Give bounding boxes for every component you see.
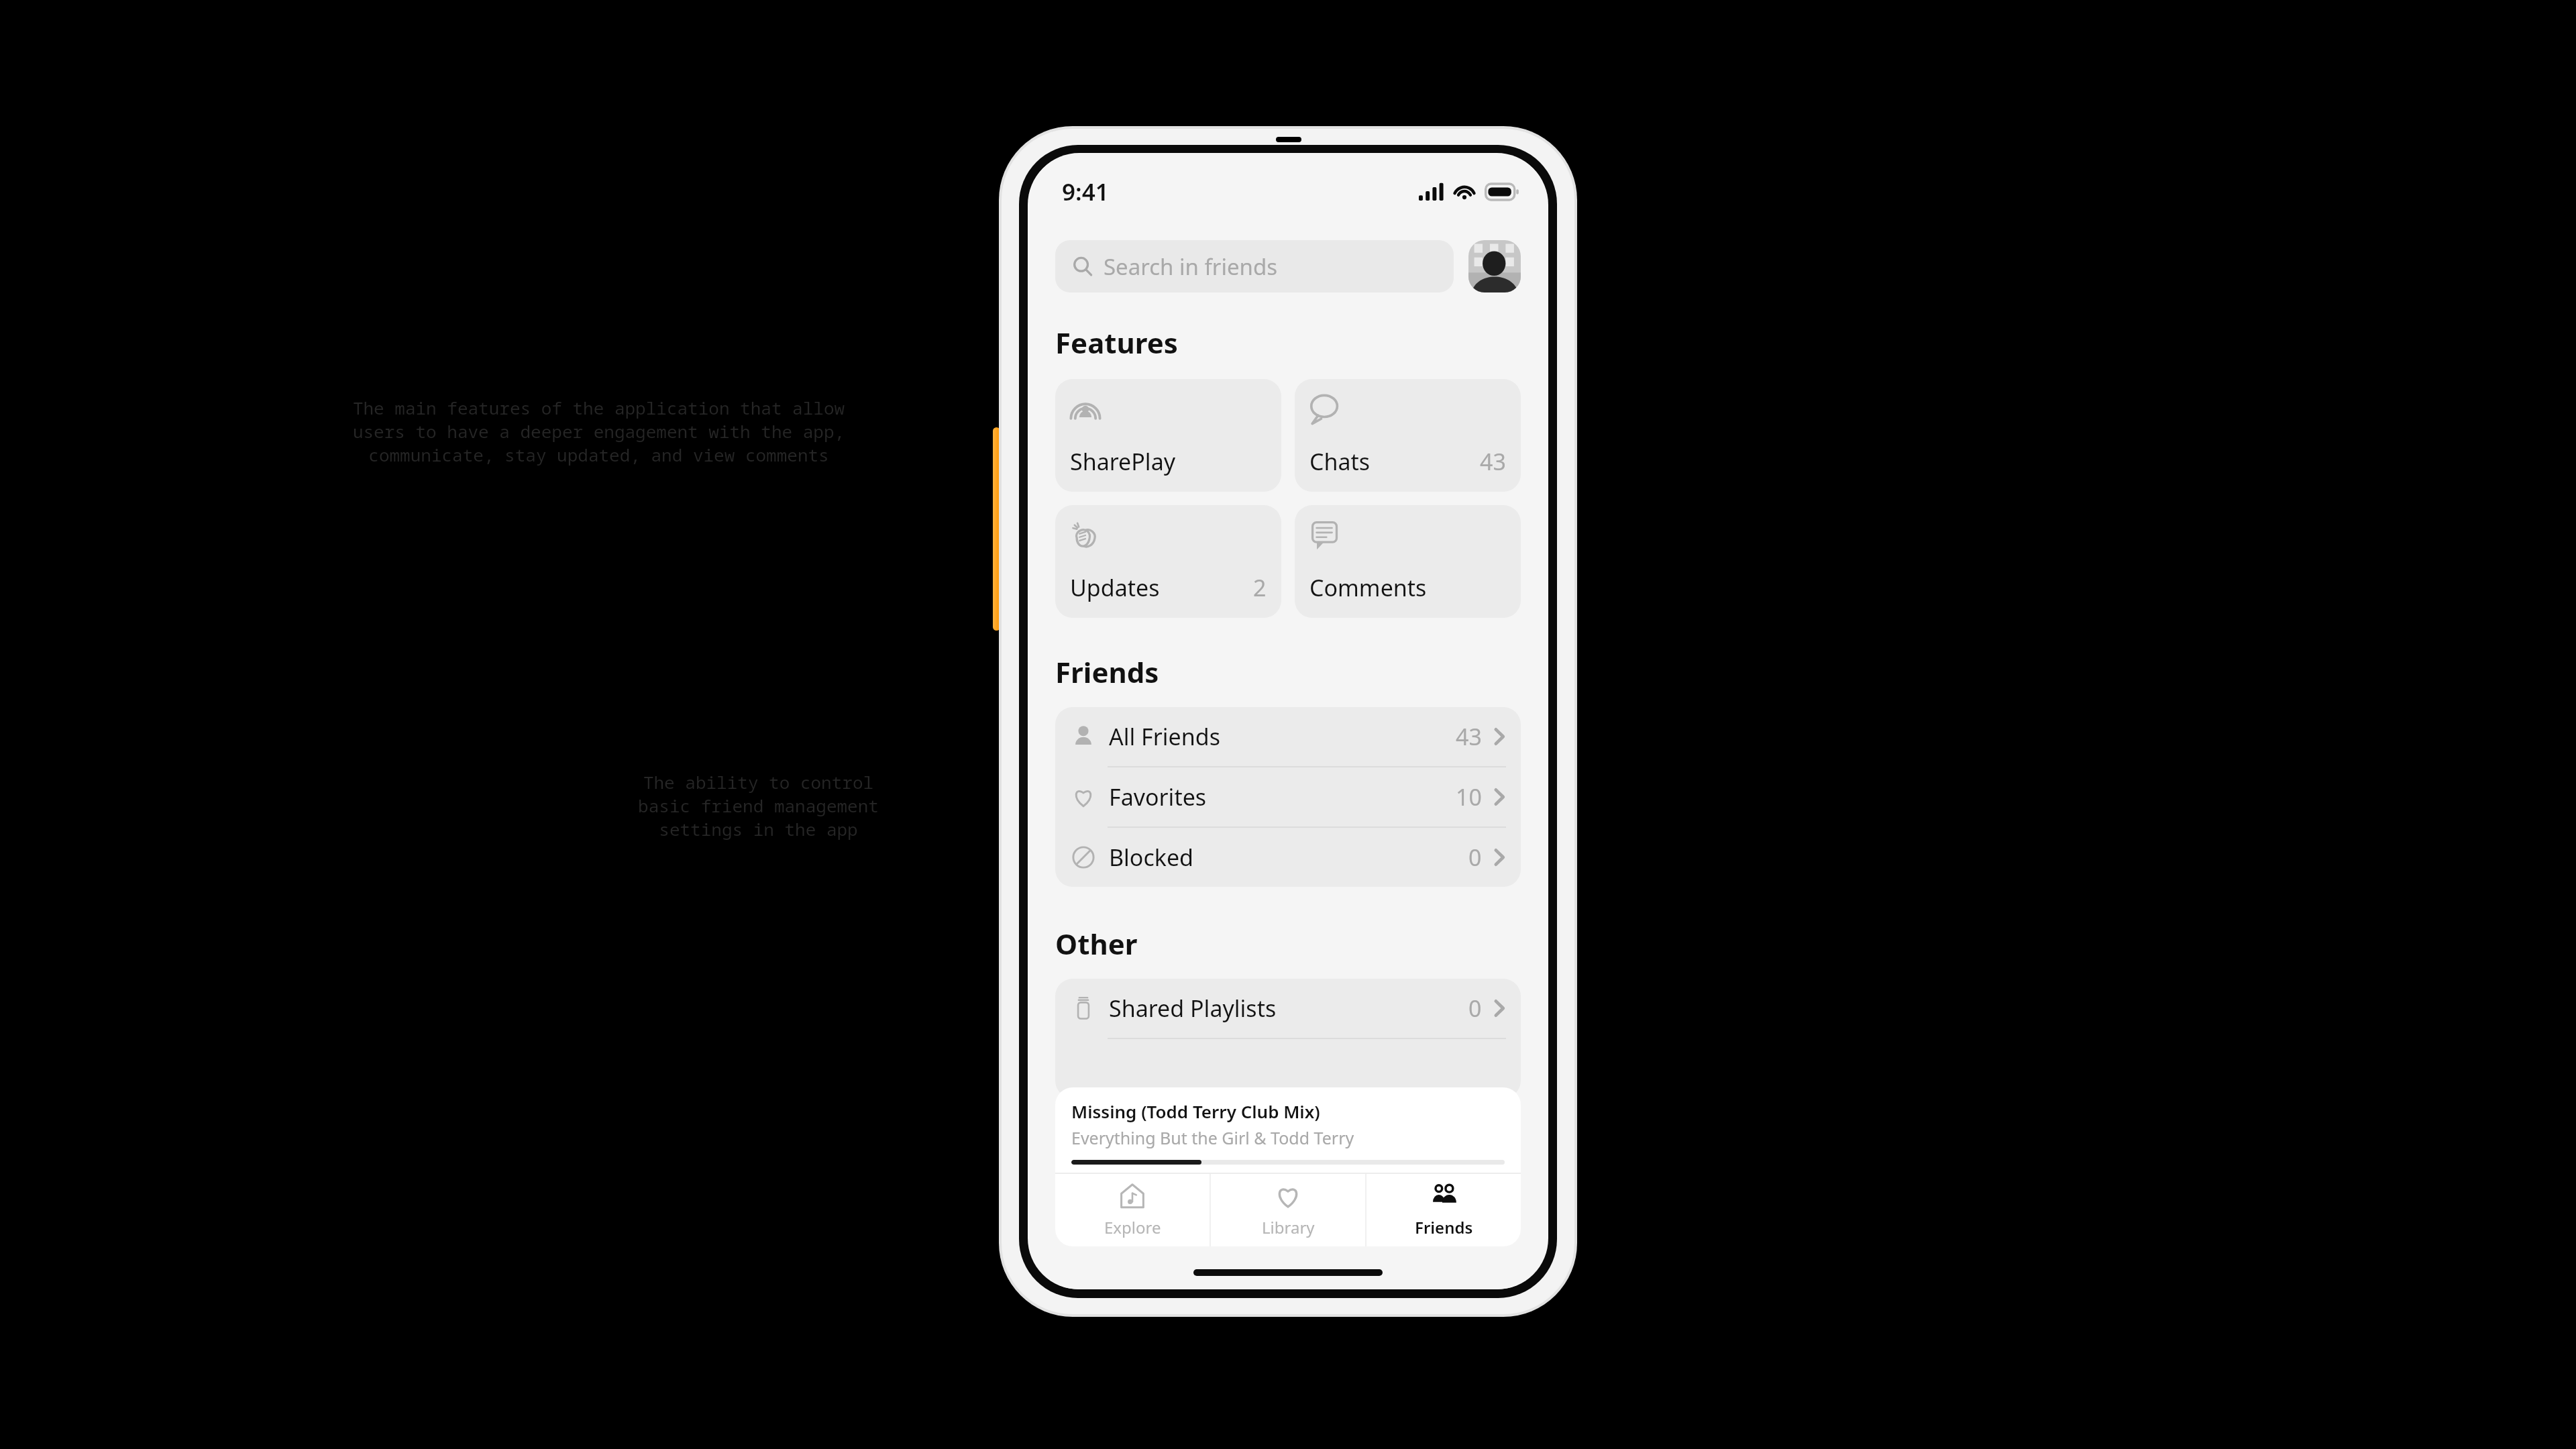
staticText: 43 (1456, 721, 1482, 752)
button[interactable]: Shared Playlists (1055, 979, 1521, 1038)
staticText: All Friends (1109, 721, 1220, 752)
staticText: communicate, stay updated, and view comm… (238, 443, 959, 466)
staticText: Blocked (1109, 842, 1194, 873)
staticText: Chats (1309, 446, 1371, 477)
staticText: 43 (1480, 446, 1506, 477)
button[interactable]: SharePlay (1055, 379, 1281, 492)
staticText: Favorites (1109, 782, 1207, 812)
staticText: Comments (1309, 572, 1427, 603)
button[interactable]: Blocked (1055, 828, 1521, 887)
button[interactable]: Friends (1366, 1174, 1521, 1246)
button[interactable]: Search in friends (1055, 240, 1454, 292)
staticText: Features (1055, 323, 1178, 362)
staticText: Explore (1104, 1216, 1161, 1238)
staticText: Friends (1415, 1216, 1473, 1238)
button[interactable]: All Friends (1055, 707, 1521, 766)
button[interactable]: Missing (Todd Terry Club Mix) (1055, 1087, 1521, 1173)
staticText: Friends (1055, 653, 1159, 691)
button[interactable]: Comments (1295, 505, 1521, 618)
staticText: Missing (Todd Terry Club Mix) (1071, 1099, 1320, 1123)
staticText: Search in friends (1104, 252, 1278, 282)
staticText: 2 (1253, 572, 1267, 603)
staticText: 10 (1456, 782, 1482, 812)
staticText: basic friend management (582, 794, 934, 817)
button[interactable]: Library (1211, 1174, 1365, 1246)
staticText: Updates (1070, 572, 1160, 603)
staticText: SharePlay (1070, 446, 1176, 477)
staticText: settings in the app (582, 817, 934, 841)
button[interactable]: Updates (1055, 505, 1281, 618)
button[interactable]: Explore (1055, 1174, 1210, 1246)
button[interactable]: Profile (1468, 240, 1521, 292)
button[interactable]: Chats (1295, 379, 1521, 492)
staticText: The main features of the application tha… (238, 396, 959, 419)
staticText: 0 (1468, 993, 1482, 1024)
staticText: users to have a deeper engagement with t… (238, 419, 959, 443)
staticText: 0 (1468, 842, 1482, 873)
staticText: The ability to control (582, 770, 934, 794)
staticText: Everything But the Girl & Todd Terry (1071, 1126, 1354, 1149)
staticText: Other (1055, 924, 1138, 963)
staticText: Library (1262, 1216, 1315, 1238)
staticText: 9:41 (1062, 176, 1109, 208)
staticText: Shared Playlists (1109, 993, 1277, 1024)
button[interactable]: Favorites (1055, 767, 1521, 826)
